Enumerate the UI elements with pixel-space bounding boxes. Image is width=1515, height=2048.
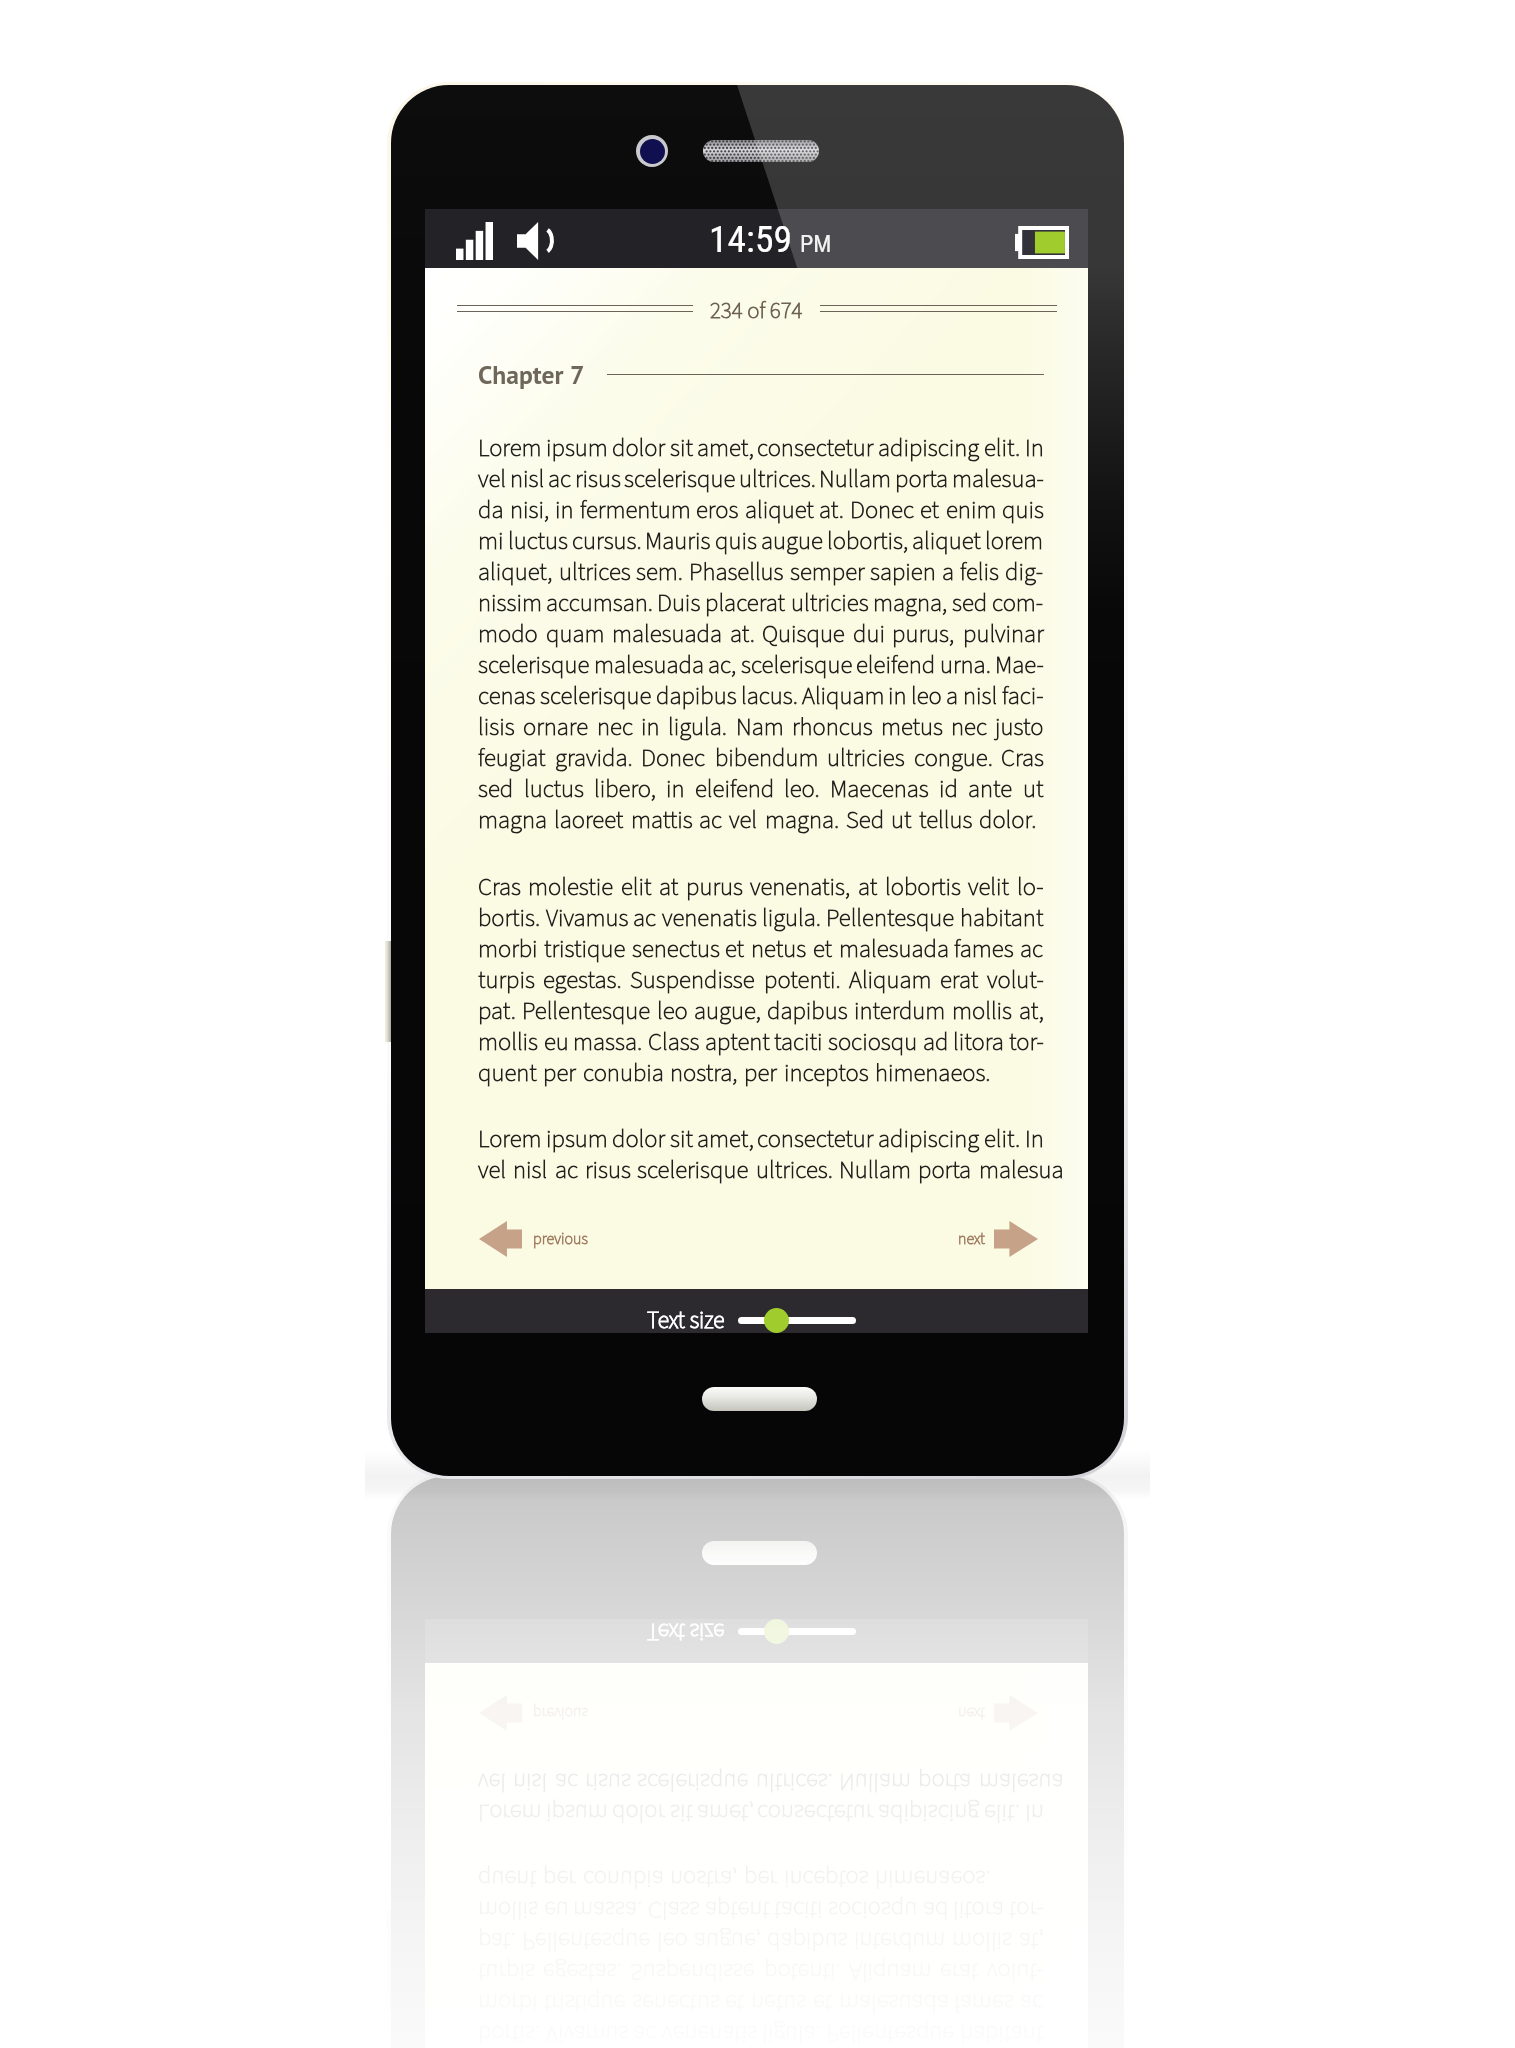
staticText: Cras bbox=[1001, 741, 1044, 776]
staticText: ultrices. bbox=[739, 462, 816, 497]
staticText: habitant bbox=[960, 901, 1044, 936]
staticText: porta bbox=[918, 1153, 972, 1188]
staticText: Quisque bbox=[762, 617, 845, 652]
staticText: fames bbox=[954, 932, 1014, 967]
staticText: ac bbox=[699, 803, 723, 838]
staticText: consectetur bbox=[757, 1122, 874, 1157]
staticText: magna bbox=[478, 803, 548, 838]
staticText: per bbox=[744, 1861, 777, 1896]
staticText: gravida. bbox=[555, 741, 633, 776]
staticText: et bbox=[813, 932, 833, 967]
staticText: ultrices bbox=[559, 555, 631, 590]
staticText: amet, bbox=[697, 431, 754, 466]
staticText: Donec bbox=[641, 741, 706, 776]
staticText: Pellentesque bbox=[522, 994, 651, 1029]
staticText: ante bbox=[968, 772, 1013, 807]
staticText: tor- bbox=[1009, 1025, 1044, 1060]
staticText: lobortis, bbox=[827, 524, 909, 559]
staticText: lo- bbox=[1017, 870, 1044, 905]
staticText: scelerisque bbox=[540, 679, 652, 714]
staticText: ligula. bbox=[668, 710, 728, 745]
staticText: ac bbox=[1020, 932, 1044, 967]
staticText: volut- bbox=[987, 963, 1044, 998]
staticText: taciti bbox=[774, 1892, 823, 1927]
staticText: ad bbox=[923, 1025, 949, 1060]
staticText: Donec bbox=[641, 741, 706, 776]
staticText: malesuada bbox=[594, 648, 704, 683]
staticText: per bbox=[744, 1056, 777, 1091]
staticText: In bbox=[1025, 431, 1044, 466]
staticText: magna, bbox=[873, 586, 948, 621]
button[interactable]: next bbox=[958, 1695, 1038, 1731]
staticText: sapien bbox=[870, 555, 936, 590]
staticText: aptent bbox=[705, 1892, 770, 1927]
staticText: vel bbox=[478, 1764, 507, 1799]
staticText: pulvinar bbox=[963, 617, 1044, 652]
staticText: risus bbox=[585, 1153, 631, 1188]
staticText: mollis bbox=[478, 1025, 539, 1060]
staticText: quam bbox=[546, 617, 605, 652]
staticText: in bbox=[888, 679, 907, 714]
staticText: bibendum bbox=[715, 741, 819, 776]
staticText: pat. bbox=[478, 994, 516, 1029]
staticText: quis bbox=[1002, 493, 1044, 528]
staticText: lobortis bbox=[885, 870, 961, 905]
staticText: accumsan. bbox=[546, 586, 653, 621]
staticText: leo bbox=[911, 679, 942, 714]
staticText: massa. bbox=[573, 1025, 643, 1060]
staticText: in bbox=[641, 710, 660, 745]
button[interactable]: Text size bbox=[647, 1298, 856, 1342]
staticText: nisl bbox=[963, 679, 998, 714]
staticText: elit. bbox=[984, 1122, 1021, 1157]
staticText: scelerisque bbox=[637, 1153, 749, 1188]
staticText: quent bbox=[478, 1861, 537, 1896]
staticText: consectetur bbox=[757, 1122, 874, 1157]
staticText: ad bbox=[923, 1892, 949, 1927]
staticText: mollis bbox=[952, 994, 1013, 1029]
button[interactable]: Text size bbox=[647, 1610, 856, 1654]
staticText: lorem bbox=[985, 524, 1044, 559]
staticText: ac bbox=[555, 1153, 579, 1188]
staticText: nisl bbox=[510, 462, 545, 497]
staticText: dolor bbox=[612, 1795, 666, 1830]
staticText: ac bbox=[699, 803, 723, 838]
staticText: luctus bbox=[524, 772, 584, 807]
button[interactable]: previous bbox=[479, 1221, 588, 1257]
staticText: sed bbox=[478, 772, 514, 807]
staticText: malesuada bbox=[839, 932, 949, 967]
staticText: lisis bbox=[478, 710, 515, 745]
staticText: scelerisque bbox=[637, 1153, 749, 1188]
staticText: malesua bbox=[979, 1153, 1064, 1188]
button[interactable]: next bbox=[958, 1221, 1038, 1257]
staticText: et bbox=[920, 493, 940, 528]
button[interactable]: previous bbox=[479, 1695, 588, 1731]
staticText: in bbox=[888, 679, 907, 714]
staticText: litora bbox=[953, 1025, 1004, 1060]
staticText: ultrices. bbox=[756, 1764, 833, 1799]
staticText: dig- bbox=[1005, 555, 1044, 590]
staticText: Nullam bbox=[839, 1764, 912, 1799]
staticText: fermentum bbox=[580, 493, 691, 528]
staticText: mi bbox=[478, 524, 504, 559]
staticText: risus bbox=[585, 1153, 631, 1188]
staticText: da bbox=[478, 493, 504, 528]
staticText: Class bbox=[648, 1025, 700, 1060]
staticText: ornare bbox=[523, 710, 589, 745]
staticText: laoreet bbox=[554, 803, 624, 838]
